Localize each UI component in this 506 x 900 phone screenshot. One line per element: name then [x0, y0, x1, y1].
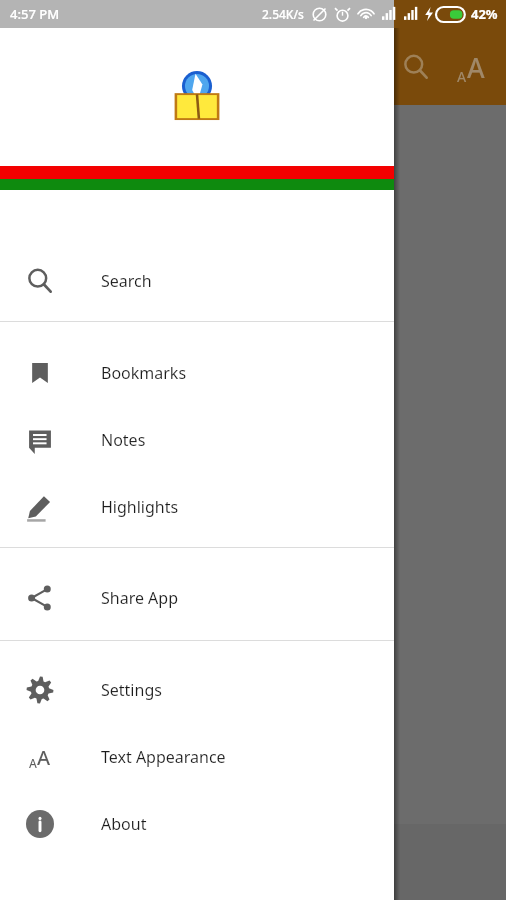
- button[interactable]: Notes: [0, 417, 394, 463]
- button[interactable]: Bookmarks: [0, 350, 394, 396]
- staticText: A: [467, 49, 485, 86]
- button[interactable]: Search: [0, 258, 394, 304]
- staticText: angso: [296, 529, 358, 559]
- button[interactable]: Search: [390, 41, 442, 93]
- staticText: 2.54K/s: [262, 6, 304, 22]
- staticText: Settings: [101, 679, 162, 701]
- button[interactable]: Settings: [0, 667, 394, 713]
- staticText: Text Appearance: [101, 746, 226, 768]
- button[interactable]: A: [0, 734, 394, 780]
- staticText: A: [37, 744, 51, 771]
- staticText: Notes: [101, 429, 146, 451]
- button[interactable]: Highlights: [0, 484, 394, 530]
- staticText: Search: [101, 270, 152, 292]
- staticText: Highlights: [101, 496, 179, 518]
- button[interactable]: Text size: [442, 38, 500, 96]
- button[interactable]: About: [0, 801, 394, 847]
- staticText: 4:57 PM: [10, 5, 60, 23]
- staticText: A: [457, 67, 467, 86]
- staticText: About: [101, 813, 147, 835]
- staticText: au: [296, 611, 323, 641]
- staticText: Share App: [101, 587, 179, 609]
- staticText: A: [29, 755, 37, 771]
- staticText: Bookmarks: [101, 362, 187, 384]
- staticText: 42%: [471, 5, 498, 23]
- button[interactable]: Share App: [0, 575, 394, 621]
